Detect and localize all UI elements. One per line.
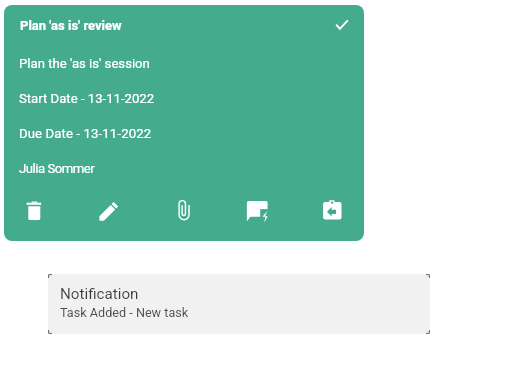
button[interactable]: Attach file	[170, 197, 198, 225]
staticText: Julia Sommer	[19, 161, 95, 176]
button[interactable]: Mark task complete	[331, 13, 355, 37]
button[interactable]: Move task	[318, 196, 346, 224]
button[interactable]: Add comment	[243, 197, 271, 225]
button[interactable]: Edit task	[94, 198, 122, 226]
button[interactable]: Notification	[48, 274, 430, 334]
staticText: Start Date - 13-11-2022	[19, 91, 155, 106]
staticText: Plan 'as is' review	[20, 18, 122, 33]
button[interactable]: Plan 'as is' review	[4, 5, 364, 241]
staticText: Task Added - New task	[60, 305, 189, 320]
staticText: Notification	[60, 285, 139, 303]
button[interactable]: Delete task	[20, 197, 48, 225]
staticText: Due Date - 13-11-2022	[19, 126, 152, 141]
staticText: Plan the 'as is' session	[19, 56, 150, 71]
